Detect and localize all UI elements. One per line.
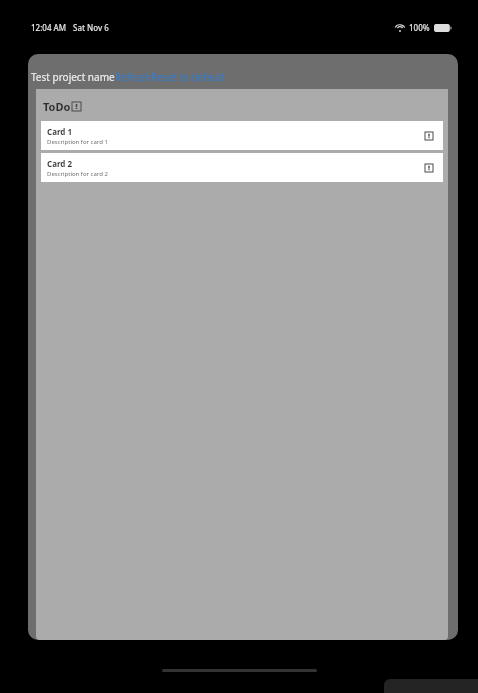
staticText: Reset to default [151,70,225,84]
staticText: ToDo [43,99,71,114]
button[interactable]: Card options [421,128,437,144]
button[interactable]: ToDo [43,99,81,114]
button[interactable]: Card options [421,160,437,176]
button[interactable]: Reset to default [151,70,225,84]
button[interactable]: Card 1 [41,121,443,150]
staticText: Refresh [115,70,151,84]
staticText: 100% [409,22,430,33]
button[interactable]: Refresh [115,70,151,84]
staticText: Test project name [31,70,115,84]
staticText: Description for card 1 [47,138,108,146]
button[interactable]: Card 2 [41,153,443,182]
staticText: 12:04 AM [31,22,67,33]
staticText: Card 2 [47,158,73,169]
staticText: Sat Nov 6 [73,22,109,33]
staticText: Description for card 2 [47,170,108,178]
staticText: Card 1 [47,126,73,137]
